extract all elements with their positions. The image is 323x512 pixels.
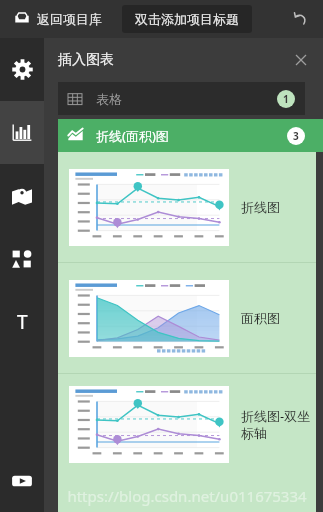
button[interactable]: Map bbox=[0, 164, 44, 227]
button[interactable]: 折线(面积)图 bbox=[58, 119, 323, 152]
button[interactable]: Media bbox=[0, 449, 44, 512]
button[interactable]: 折线图 bbox=[58, 152, 316, 262]
staticText: T bbox=[17, 309, 28, 335]
button[interactable]: 面积图 bbox=[58, 263, 316, 373]
staticText: 折线图-双坐标轴 bbox=[241, 407, 316, 442]
staticText: 插入图表 bbox=[58, 51, 114, 69]
staticText: https://blog.csdn.net/u011675334 bbox=[67, 486, 307, 506]
button[interactable]: Close bbox=[291, 50, 311, 70]
button[interactable]: Shapes bbox=[0, 227, 44, 290]
button[interactable]: Undo bbox=[287, 6, 313, 32]
staticText: 3 bbox=[293, 129, 299, 143]
staticText: 折线(面积)图 bbox=[96, 127, 169, 145]
button[interactable]: 双击添加项目标题 bbox=[122, 5, 252, 33]
staticText: 双击添加项目标题 bbox=[135, 11, 239, 27]
button[interactable]: Charts bbox=[0, 101, 44, 164]
staticText: 返回项目库 bbox=[37, 11, 102, 27]
staticText: 折线图 bbox=[241, 199, 280, 215]
button[interactable]: 返回项目库 bbox=[10, 7, 106, 31]
button[interactable]: Text bbox=[0, 290, 44, 353]
staticText: 面积图 bbox=[241, 310, 280, 326]
staticText: 1 bbox=[283, 92, 289, 106]
button[interactable]: Settings bbox=[0, 38, 44, 101]
staticText: 表格 bbox=[96, 91, 122, 107]
button[interactable]: 表格 bbox=[58, 82, 305, 115]
button[interactable]: 折线图-双坐标轴 bbox=[58, 374, 316, 474]
